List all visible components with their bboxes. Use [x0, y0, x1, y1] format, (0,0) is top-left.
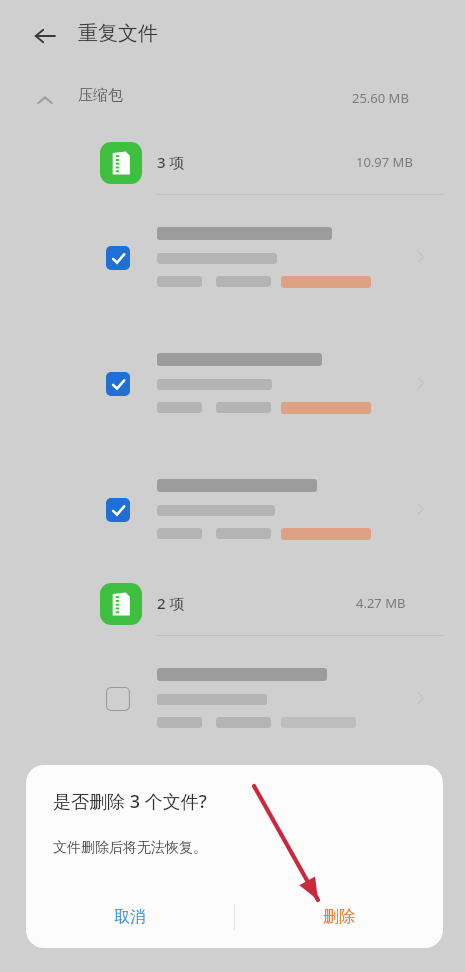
- button[interactable]: 已选中: [0, 447, 465, 573]
- button[interactable]: 3 项: [0, 132, 465, 194]
- button[interactable]: 已选中: [106, 498, 130, 522]
- button[interactable]: 压缩包: [0, 72, 465, 124]
- button[interactable]: 2 项: [0, 573, 465, 635]
- staticText: 4.27 MB: [356, 594, 406, 612]
- staticText: 25.60 MB: [352, 89, 409, 107]
- staticText: 压缩包: [78, 86, 123, 105]
- staticText: 2 项: [157, 593, 185, 613]
- button[interactable]: 已选中: [106, 372, 130, 396]
- button[interactable]: 未选中: [106, 687, 130, 711]
- button[interactable]: 删除: [235, 886, 443, 948]
- staticText: 文件删除后将无法恢复。: [53, 839, 207, 857]
- staticText: 删除: [323, 907, 355, 927]
- button[interactable]: 取消: [26, 886, 234, 948]
- button[interactable]: 已选中: [0, 321, 465, 447]
- button[interactable]: 已选中: [0, 195, 465, 321]
- staticText: 10.97 MB: [356, 153, 413, 171]
- button[interactable]: 未选中: [0, 636, 465, 762]
- staticText: 重复文件: [78, 21, 158, 46]
- staticText: 3 项: [157, 152, 185, 172]
- button[interactable]: 返回: [25, 16, 65, 56]
- staticText: 是否删除 3 个文件?: [53, 789, 207, 814]
- button[interactable]: 已选中: [106, 246, 130, 270]
- staticText: 取消: [114, 907, 146, 927]
